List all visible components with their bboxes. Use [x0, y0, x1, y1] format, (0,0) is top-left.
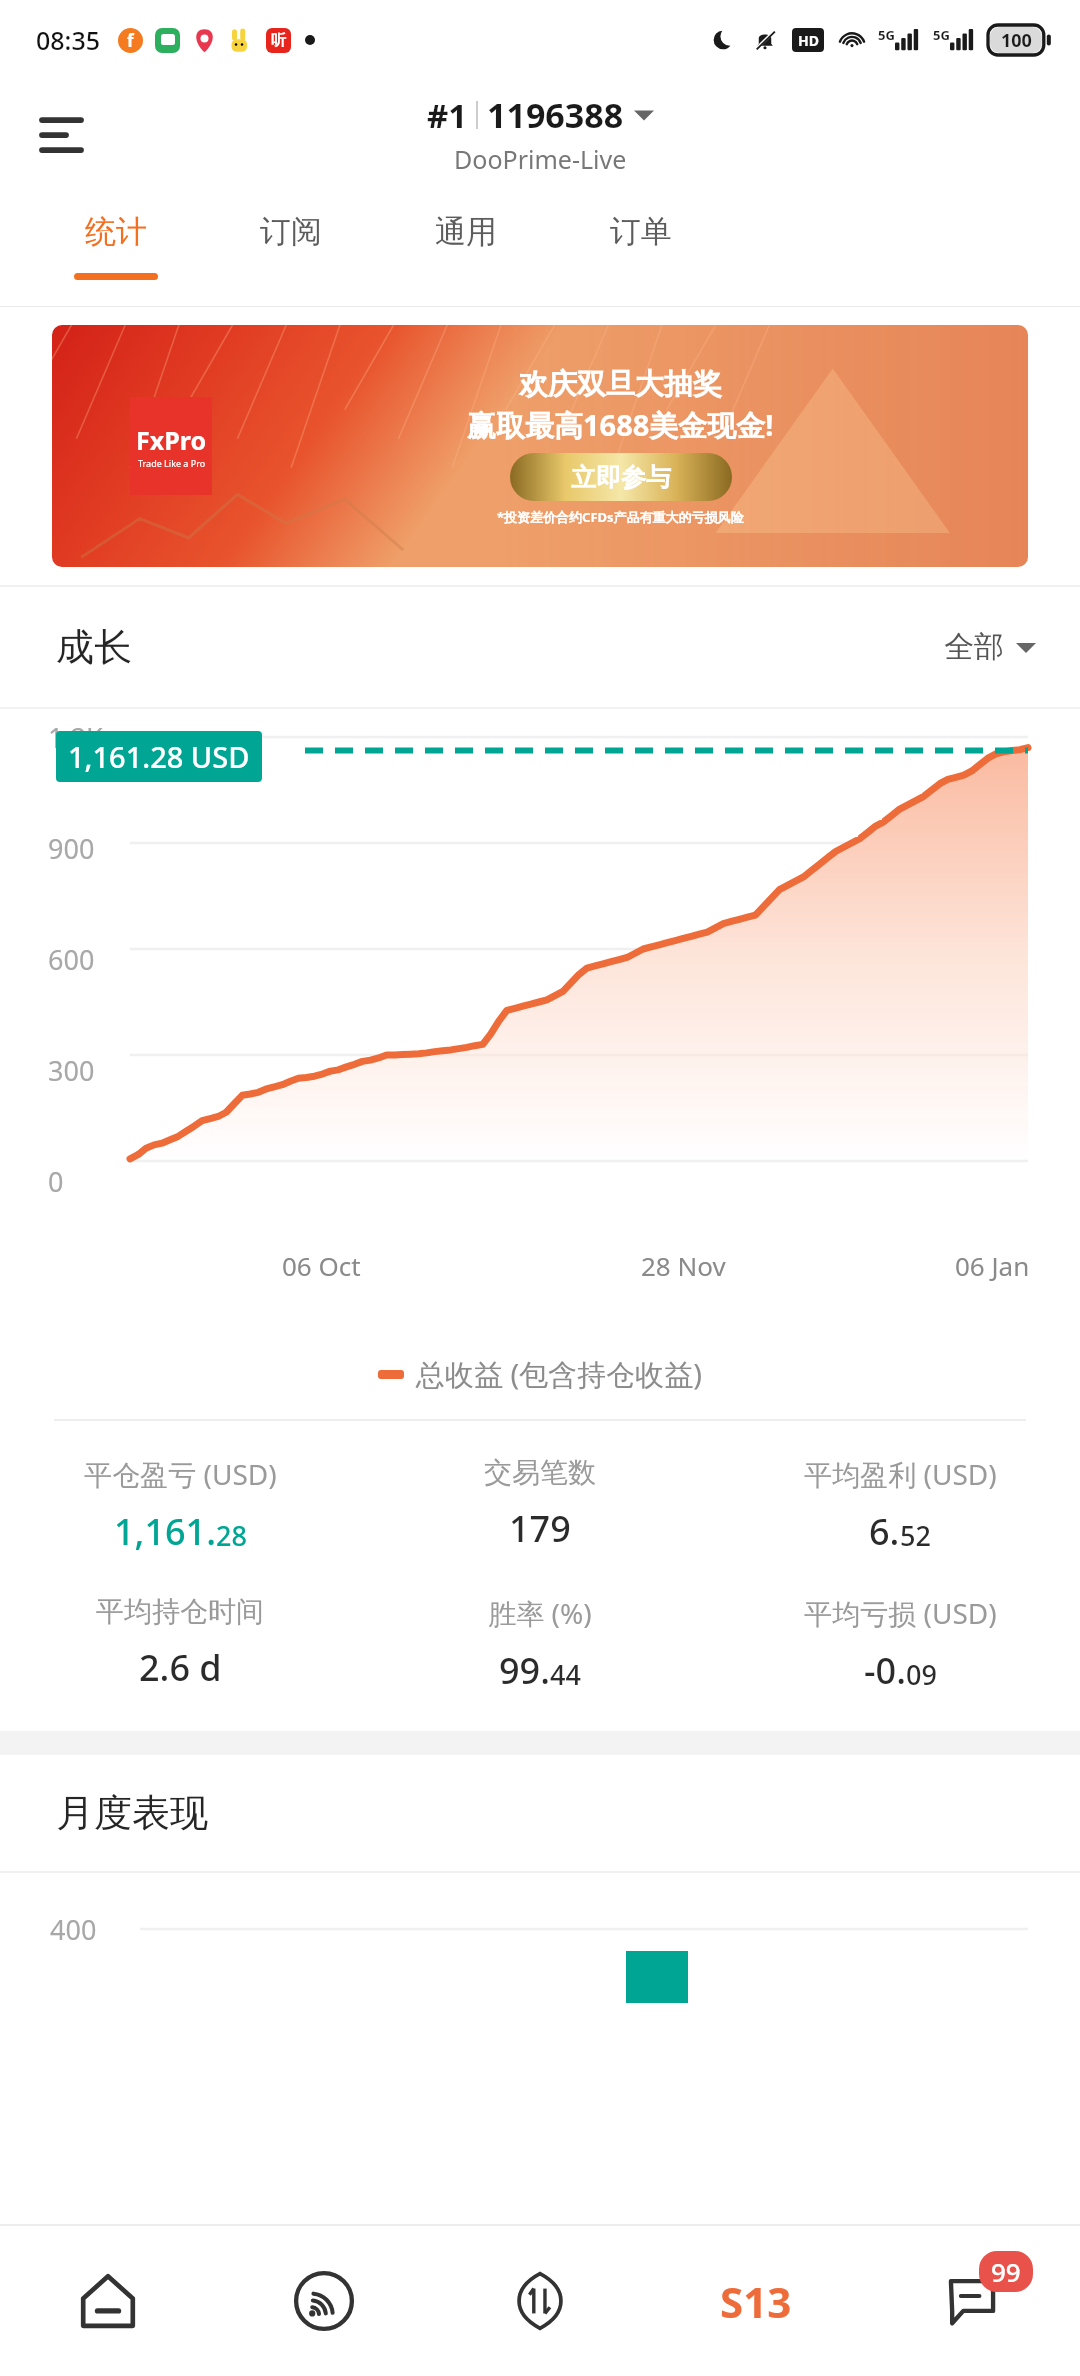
staticText: 胜率 (%): [488, 1594, 592, 1632]
staticText: S13: [720, 2273, 792, 2330]
button[interactable]: Home: [0, 2226, 216, 2376]
staticText: 28: [216, 1517, 247, 1554]
staticText: 2.6 d: [139, 1643, 222, 1692]
staticText: #1: [427, 93, 468, 138]
button[interactable]: 通用: [378, 188, 553, 306]
staticText: 5G: [933, 26, 950, 44]
staticText: 900: [48, 830, 95, 867]
staticText: 平仓盈亏 (USD): [84, 1455, 277, 1493]
button[interactable]: 全部: [944, 628, 1036, 666]
staticText: 1,161.28 USD: [68, 737, 250, 776]
staticText: 赢取最高1688美金现金!: [467, 405, 774, 445]
staticText: DooPrime-Live: [454, 142, 627, 176]
staticText: 99.: [499, 1646, 550, 1695]
staticText: 月度表现: [56, 1789, 208, 1837]
button[interactable]: #1: [427, 92, 654, 176]
button[interactable]: 订阅: [203, 188, 378, 306]
button[interactable]: Signal: [216, 2226, 432, 2376]
staticText: 300: [48, 1052, 95, 1089]
staticText: 06 Oct: [282, 1248, 361, 1283]
staticText: 52: [900, 1517, 931, 1554]
staticText: 0: [48, 1163, 64, 1200]
staticText: 06 Jan: [955, 1248, 1030, 1283]
staticText: 订单: [610, 212, 672, 251]
staticText: 08:35: [36, 23, 101, 57]
button[interactable]: 立即参与: [510, 453, 732, 501]
staticText: 6.: [869, 1507, 900, 1556]
staticText: 听: [271, 31, 286, 50]
staticText: HD: [798, 31, 819, 50]
staticText: 全部: [944, 628, 1004, 666]
button[interactable]: FxPro: [52, 325, 1028, 567]
staticText: 5G: [878, 26, 895, 44]
staticText: 成长: [56, 623, 132, 671]
staticText: 99: [991, 2254, 1021, 2289]
staticText: 400: [50, 1911, 97, 1948]
staticText: 09: [906, 1656, 937, 1693]
staticText: FxPro: [136, 423, 207, 457]
staticText: 统计: [85, 212, 147, 251]
button[interactable]: Messages: [864, 2226, 1080, 2376]
staticText: 1196388: [487, 92, 624, 138]
staticText: 平均持仓时间: [96, 1594, 264, 1629]
button[interactable]: Menu: [36, 103, 98, 165]
staticText: 平均亏损 (USD): [804, 1594, 997, 1632]
staticText: 100: [1001, 28, 1032, 53]
staticText: 1.2K: [48, 719, 103, 756]
staticText: 44: [550, 1656, 581, 1693]
staticText: 欢庆双旦大抽奖: [519, 366, 722, 403]
button[interactable]: S13: [648, 2226, 864, 2376]
button[interactable]: Trade: [432, 2226, 648, 2376]
staticText: 总收益 (包含持仓收益): [416, 1354, 702, 1394]
staticText: *投资差价合约CFDs产品有重大的亏损风险: [497, 508, 744, 526]
staticText: Trade Like a Pro: [138, 457, 206, 469]
staticText: f: [127, 29, 134, 52]
staticText: -0.: [864, 1646, 906, 1695]
staticText: 交易笔数: [484, 1455, 596, 1490]
staticText: 立即参与: [571, 462, 671, 493]
staticText: 订阅: [260, 212, 322, 251]
staticText: 通用: [435, 212, 497, 251]
staticText: 平均盈利 (USD): [804, 1455, 997, 1493]
staticText: 179: [509, 1504, 571, 1553]
button[interactable]: 统计: [28, 188, 203, 306]
staticText: 600: [48, 941, 95, 978]
button[interactable]: 订单: [553, 188, 728, 306]
staticText: 28 Nov: [641, 1248, 726, 1283]
staticText: 1,161.: [114, 1507, 216, 1556]
